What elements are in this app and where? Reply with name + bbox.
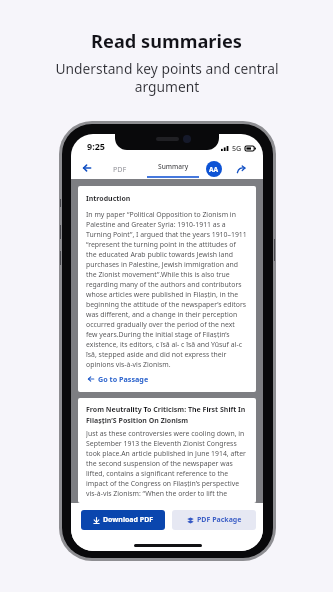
staticText: Introduction [86,194,131,204]
button[interactable]: Back [78,159,95,176]
button[interactable]: Share [233,161,249,177]
staticText: 5G [232,143,242,153]
button[interactable]: Go to Passage [88,374,149,384]
button[interactable]: PDF Package [172,510,256,530]
button[interactable]: Text size [206,161,222,177]
staticText: In my paper “Political Opposition to Zio… [86,210,248,369]
staticText: Just as these controversies were cooling… [86,429,248,496]
staticText: PDF Package [197,515,242,525]
staticText: Read summaries [91,29,242,54]
staticText: 9:25 [87,140,105,152]
staticText: PDF [113,164,127,174]
button[interactable]: PDF [106,158,134,179]
staticText: Understand key points and central argume… [47,59,287,96]
staticText: AA [209,165,219,174]
button[interactable]: Download PDF [81,510,165,530]
staticText: Go to Passage [98,374,149,384]
button[interactable]: Summary [147,158,199,179]
staticText: Download PDF [103,515,154,525]
staticText: Summary [158,162,189,171]
staticText: From Neutrality To Criticism: The First … [86,405,248,425]
